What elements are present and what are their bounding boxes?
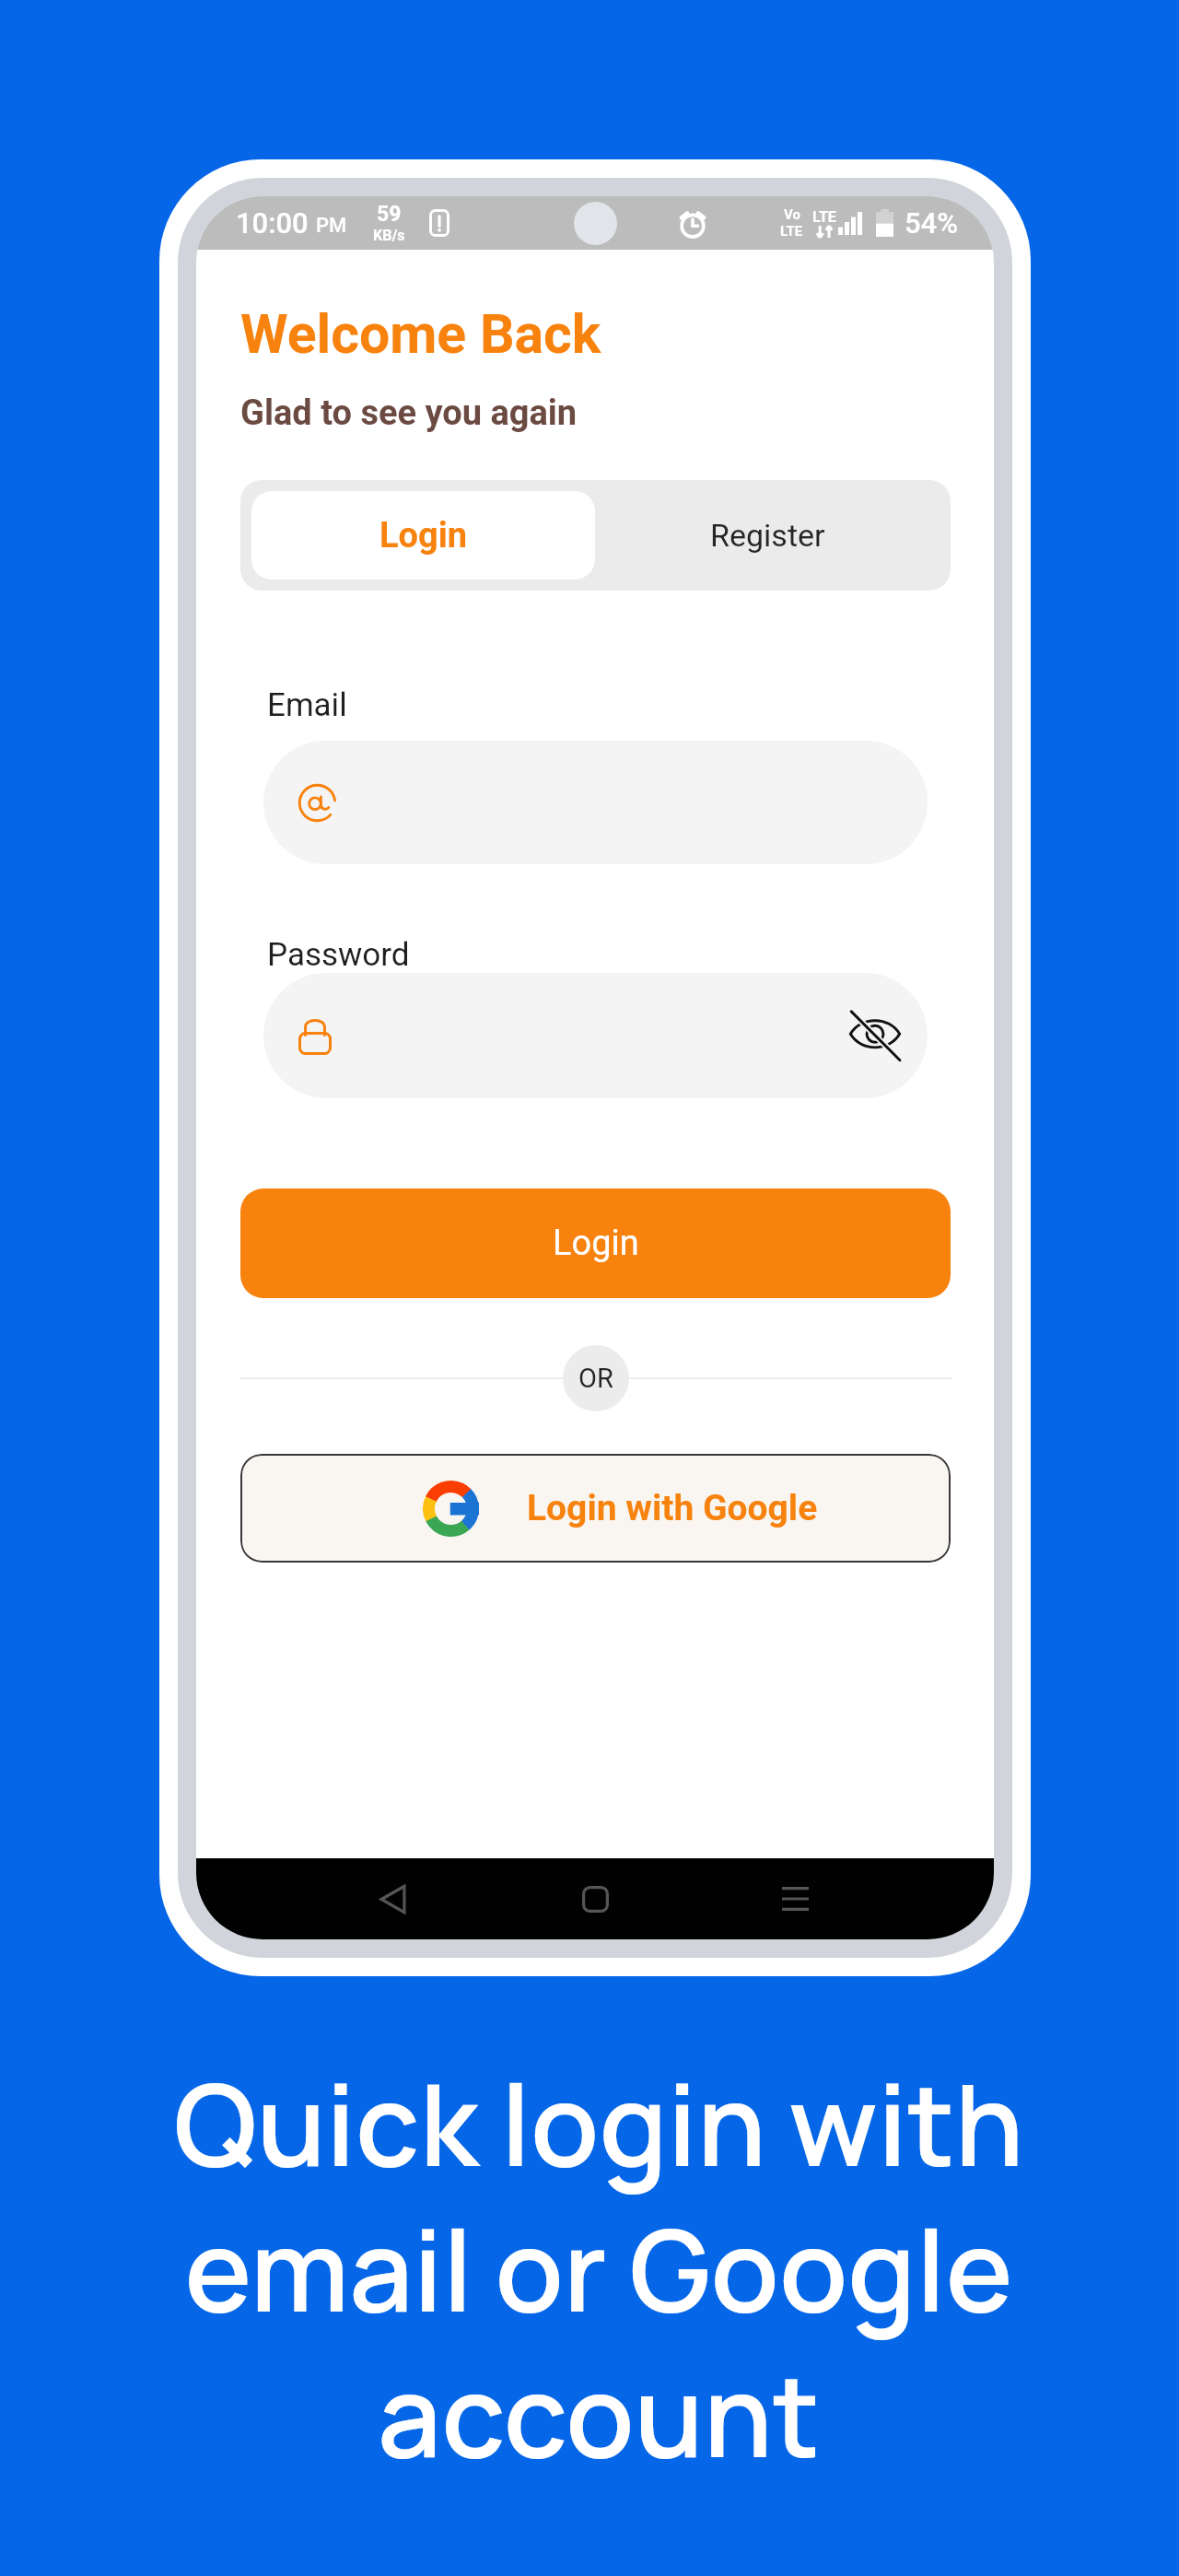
staticText: KB/s	[373, 227, 405, 244]
button[interactable]: Register	[595, 491, 940, 580]
button[interactable]: Login	[251, 491, 595, 580]
staticText: LTE	[780, 223, 803, 240]
staticText: Welcome Back	[240, 302, 601, 366]
staticText: Password	[267, 936, 410, 974]
staticText: Register	[710, 517, 825, 554]
button[interactable]: Recent apps	[744, 1858, 846, 1939]
staticText: Quick login with email or Google account	[138, 2046, 1059, 2491]
button[interactable]: Home	[544, 1858, 646, 1939]
button[interactable]	[263, 741, 928, 864]
staticText: OR	[578, 1363, 613, 1394]
staticText: 59	[377, 202, 402, 227]
staticText: LTE	[812, 208, 836, 226]
button[interactable]: Login	[240, 1188, 951, 1298]
staticText: Email	[267, 686, 347, 724]
staticText: Login	[379, 515, 468, 556]
staticText: Login with Google	[527, 1487, 818, 1529]
button[interactable]: Back	[342, 1858, 443, 1939]
staticText: Vo	[784, 206, 800, 223]
button[interactable]: Show password	[263, 973, 928, 1098]
staticText: Login	[553, 1223, 639, 1264]
staticText: 10:00	[236, 206, 309, 240]
staticText: 54%	[905, 206, 959, 240]
button[interactable]: Login with Google	[240, 1454, 951, 1563]
button[interactable]: Show password	[838, 999, 912, 1072]
staticText: Glad to see you again	[240, 392, 578, 434]
staticText: PM	[316, 214, 347, 238]
